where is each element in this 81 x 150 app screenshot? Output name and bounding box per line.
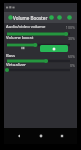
button[interactable]: Enable boost <box>40 45 68 52</box>
button[interactable]: Home <box>34 129 48 143</box>
staticText: 0% <box>63 63 75 68</box>
button[interactable] <box>4 58 77 64</box>
button[interactable] <box>4 42 77 48</box>
staticText: Bass <box>6 53 16 59</box>
button[interactable] <box>4 67 77 73</box>
staticText: Virtualizer <box>6 62 26 68</box>
staticText: 30% <box>63 36 75 41</box>
staticText: 100% <box>63 25 75 30</box>
button[interactable]: Profiles <box>55 13 64 22</box>
button[interactable]: Equalizer <box>47 13 56 22</box>
button[interactable]: Recent apps <box>55 129 69 143</box>
staticText: 60% <box>63 54 75 59</box>
staticText: Volume boost <box>6 35 34 41</box>
button[interactable] <box>4 31 77 37</box>
staticText: Audio/video volume <box>6 24 46 30</box>
button[interactable]: Settings <box>65 13 74 22</box>
staticText: Volume Booster <box>13 15 48 21</box>
button[interactable]: Back <box>12 129 26 143</box>
